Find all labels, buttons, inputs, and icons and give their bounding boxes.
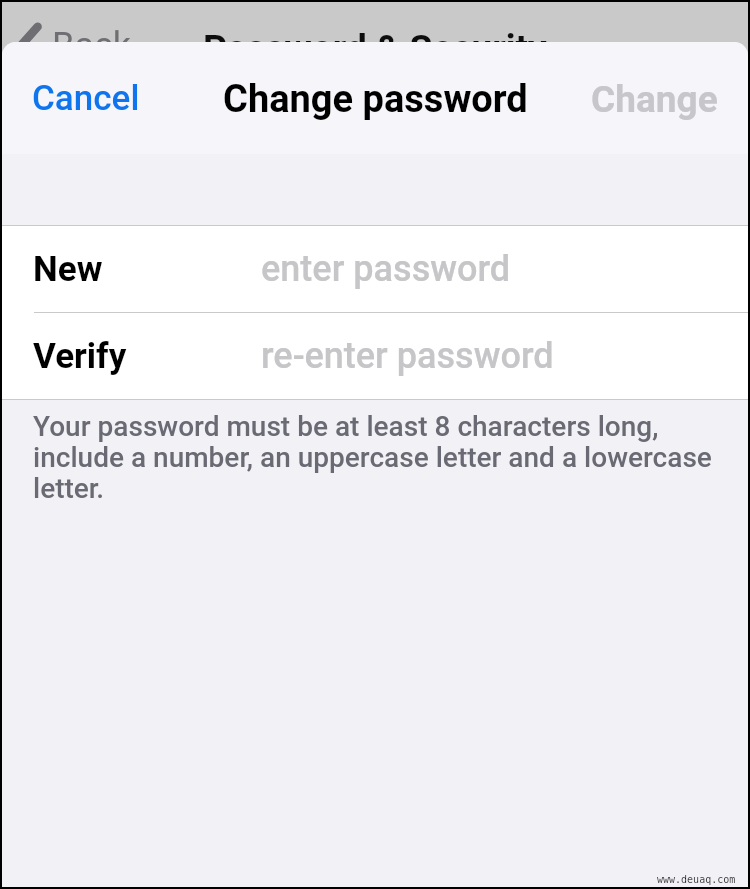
staticText: Verify — [33, 336, 261, 377]
staticText: Change — [591, 78, 718, 121]
staticText: Change password — [223, 77, 528, 122]
staticText: Your password must be at least 8 charact… — [33, 410, 720, 504]
staticText: Cancel — [32, 78, 140, 119]
button[interactable]: Verify — [2, 313, 748, 399]
staticText: Back — [52, 25, 132, 67]
staticText: Password & Security — [203, 27, 547, 70]
staticText: enter password — [261, 248, 511, 290]
button[interactable]: Back — [2, 25, 132, 67]
staticText: New — [33, 249, 261, 290]
button[interactable]: Cancel — [2, 68, 170, 129]
button[interactable]: Change — [561, 68, 748, 131]
staticText: www.deuaq.com — [657, 874, 736, 886]
staticText: re-enter password — [261, 335, 554, 377]
button[interactable]: New — [2, 226, 748, 312]
